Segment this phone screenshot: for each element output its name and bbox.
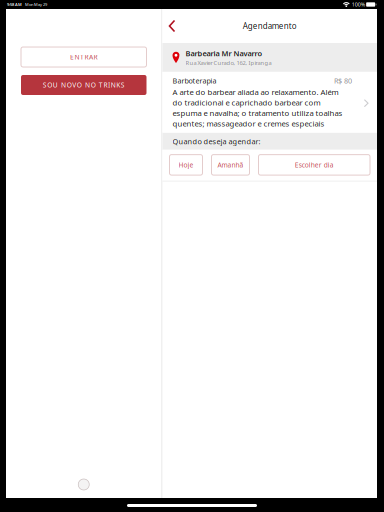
staticText: ENTRAR [70,53,98,61]
button[interactable]: ENTRAR [21,47,146,67]
button[interactable]: Escolher dia [258,155,370,175]
button[interactable]: Amanhã [211,155,249,175]
staticText: 9:58 AM [7,2,22,7]
staticText: A arte do barbear aliada ao relaxamento.… [172,87,342,129]
staticText: SOU NOVO NO TRINKS [43,81,125,89]
staticText: R$ 80 [334,76,352,86]
staticText: Mon May 29 [22,2,47,7]
button[interactable]: SOU NOVO NO TRINKS [21,75,146,95]
staticText: Barbearia Mr Navarro [185,48,262,58]
staticText: Barboterapia [172,76,216,86]
staticText: Agendamento [243,21,297,31]
staticText: Amanhã [217,160,243,169]
button[interactable]: Hoje [169,155,202,175]
staticText: Quando deseja agendar: [172,136,260,146]
staticText: 100% [352,1,365,8]
staticText: Hoje [178,160,193,169]
button[interactable]: Back [166,14,177,37]
button[interactable]: Barboterapia [162,72,377,133]
staticText: Rua Xavier Curado, 162, Ipiranga [185,59,271,67]
staticText: Escolher dia [295,160,334,169]
